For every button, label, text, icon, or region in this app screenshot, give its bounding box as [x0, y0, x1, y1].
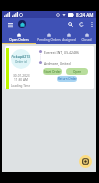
button[interactable]: Start Order	[43, 68, 62, 75]
staticText: 11:30 AM	[14, 78, 28, 82]
button[interactable]: Closed Orders	[77, 31, 96, 43]
staticText: Ardmore, United	[44, 61, 71, 66]
button[interactable]: Return Order	[57, 76, 77, 82]
staticText: 8:24 AM	[76, 12, 94, 18]
staticText: Everest INT, US-42486	[44, 50, 79, 55]
button[interactable]: Refresh	[76, 19, 87, 30]
button[interactable]: Scan order	[79, 155, 92, 168]
staticText: Pending Orders	[37, 38, 61, 42]
button[interactable]: More options	[87, 20, 96, 29]
button[interactable]: App logo	[18, 20, 26, 28]
staticText: Loading Time	[11, 84, 31, 88]
staticText: Start Order	[44, 70, 61, 74]
staticText: Closed Orders	[77, 38, 96, 42]
staticText: Order id	[15, 60, 27, 64]
button[interactable]: Assigned	[61, 31, 77, 43]
staticText: Open	[73, 70, 82, 74]
staticText: Open Orders	[9, 38, 29, 42]
button[interactable]: Open Orders	[2, 31, 36, 43]
button[interactable]: Pending Orders	[36, 31, 61, 43]
button[interactable]: Open	[66, 68, 88, 75]
staticText: Return Order	[58, 77, 77, 81]
button[interactable]: Navigation menu	[6, 20, 15, 29]
button[interactable]: Pickup#213	[5, 46, 94, 89]
staticText: Pickup#213	[11, 54, 31, 59]
button[interactable]: Search	[65, 19, 76, 30]
staticText: Assigned	[62, 38, 76, 42]
staticText: 30-01-2023	[13, 74, 30, 78]
